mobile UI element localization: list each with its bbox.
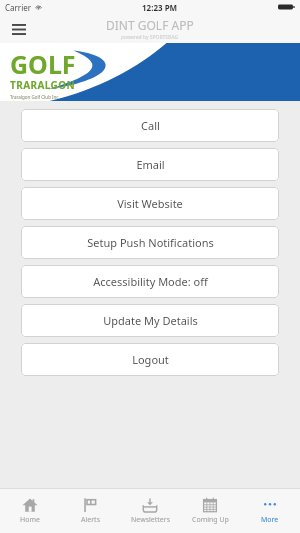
staticText: Newsletters [131, 515, 170, 525]
button[interactable]: Alerts [60, 489, 120, 533]
staticText: TRARALGON [10, 78, 75, 92]
staticText: Carrier [5, 2, 32, 13]
staticText: More [261, 515, 279, 525]
button[interactable]: Email [21, 148, 279, 181]
button[interactable]: Menu [7, 17, 31, 41]
staticText: Coming Up [192, 515, 229, 525]
staticText: Update My Details [103, 313, 198, 328]
button[interactable]: Call [21, 109, 279, 142]
staticText: Alerts [81, 515, 100, 525]
staticText: Email [136, 157, 165, 172]
staticText: GOLF [10, 47, 76, 81]
button[interactable]: Coming Up [180, 489, 240, 533]
staticText: 12:23 PM [142, 2, 178, 13]
staticText: Setup Push Notifications [87, 235, 214, 250]
button[interactable]: Home [0, 489, 60, 533]
button[interactable]: More [240, 489, 300, 533]
staticText: powered by SPORTSBAG [121, 34, 179, 41]
staticText: Call [141, 118, 160, 133]
button[interactable]: Update My Details [21, 304, 279, 337]
staticText: Visit Website [117, 196, 183, 211]
button[interactable]: Accessibility Mode: off [21, 265, 279, 298]
button[interactable]: Setup Push Notifications [21, 226, 279, 259]
staticText: Accessibility Mode: off [93, 274, 208, 289]
staticText: Home [20, 515, 40, 525]
button[interactable]: Newsletters [120, 489, 180, 533]
staticText: Traralgon Golf Club Inc [10, 94, 59, 100]
button[interactable]: Logout [21, 343, 279, 376]
staticText: Logout [132, 352, 169, 367]
staticText: DINT GOLF APP [106, 17, 194, 33]
button[interactable]: Visit Website [21, 187, 279, 220]
